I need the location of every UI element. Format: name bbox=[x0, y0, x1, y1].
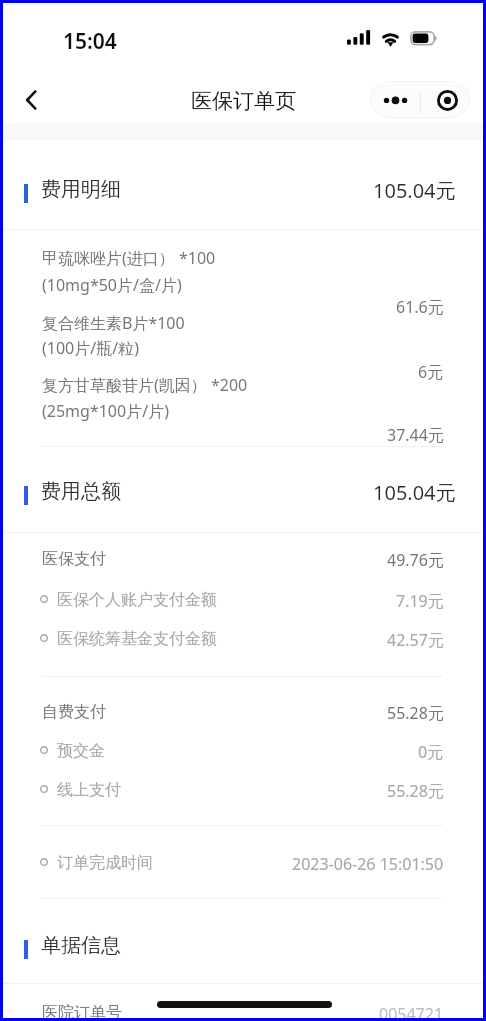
button[interactable]: 自费支付 bbox=[0, 692, 486, 730]
button[interactable]: Back bbox=[10, 78, 54, 122]
staticText: 61.6元 bbox=[396, 296, 444, 318]
staticText: 复合维生素B片*100 bbox=[42, 312, 185, 334]
staticText: 37.44元 bbox=[387, 424, 444, 446]
staticText: 55.28元 bbox=[387, 780, 444, 802]
staticText: 费用总额 bbox=[41, 479, 121, 504]
staticText: 医保个人账户支付金额 bbox=[57, 590, 217, 610]
staticText: 自费支付 bbox=[42, 702, 106, 722]
staticText: 105.04元 bbox=[373, 177, 456, 204]
staticText: 医保统筹基金支付金额 bbox=[57, 629, 217, 649]
staticText: 医保支付 bbox=[42, 549, 106, 569]
staticText: 单据信息 bbox=[41, 933, 121, 958]
staticText: 线上支付 bbox=[57, 780, 121, 800]
staticText: (25mg*100片/片) bbox=[42, 400, 169, 422]
staticText: (10mg*50片/盒/片) bbox=[42, 274, 182, 296]
staticText: 费用明细 bbox=[41, 177, 121, 202]
staticText: 预交金 bbox=[57, 741, 105, 761]
staticText: 42.57元 bbox=[387, 629, 444, 651]
button[interactable]: 线上支付 bbox=[0, 770, 486, 808]
staticText: 0054721 bbox=[379, 1003, 444, 1021]
staticText: 复方甘草酸苷片(凯因） *200 bbox=[42, 374, 248, 396]
button[interactable]: More options bbox=[370, 81, 421, 118]
button[interactable]: 订单完成时间 bbox=[0, 843, 486, 881]
staticText: 105.04元 bbox=[373, 479, 456, 506]
staticText: 6元 bbox=[418, 361, 444, 383]
button[interactable]: 单据信息 bbox=[0, 921, 486, 975]
staticText: 0元 bbox=[418, 741, 444, 763]
button[interactable]: 医保个人账户支付金额 bbox=[0, 580, 486, 618]
button[interactable]: 费用明细 bbox=[0, 165, 486, 219]
staticText: 49.76元 bbox=[387, 549, 444, 571]
staticText: 甲巯咪唑片(进口） *100 bbox=[42, 247, 216, 269]
button[interactable]: 费用总额 bbox=[0, 467, 486, 521]
staticText: 7.19元 bbox=[396, 590, 444, 612]
button[interactable]: Close mini program bbox=[421, 81, 470, 118]
button[interactable]: 医保统筹基金支付金额 bbox=[0, 619, 486, 657]
button[interactable]: 预交金 bbox=[0, 731, 486, 769]
staticText: 订单完成时间 bbox=[57, 853, 153, 873]
staticText: (100片/瓶/粒) bbox=[42, 337, 139, 359]
staticText: 医院订单号 bbox=[42, 1003, 122, 1021]
button[interactable]: 医保支付 bbox=[0, 539, 486, 577]
staticText: 55.28元 bbox=[387, 702, 444, 724]
staticText: 医保订单页 bbox=[191, 88, 296, 114]
staticText: 15:04 bbox=[63, 27, 117, 56]
staticText: 2023-06-26 15:01:50 bbox=[292, 853, 444, 875]
